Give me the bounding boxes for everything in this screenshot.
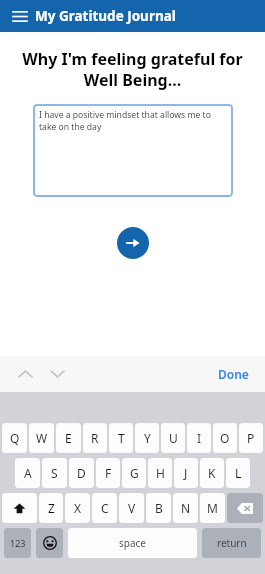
button[interactable]: Previous field — [12, 361, 38, 387]
staticText: I have a positive mindset that allows me… — [39, 109, 227, 132]
button[interactable]: Done — [214, 362, 253, 386]
staticText: 123 — [10, 537, 26, 549]
staticText: Why I'm feeling grateful for Well Being.… — [18, 48, 247, 91]
button[interactable]: M — [200, 493, 225, 523]
staticText: Y — [144, 430, 151, 446]
button[interactable]: V — [119, 493, 144, 523]
staticText: L — [235, 465, 242, 481]
staticText: X — [74, 500, 82, 516]
staticText: K — [208, 465, 216, 481]
button[interactable]: I have a positive mindset that allows me… — [33, 104, 233, 197]
staticText: O — [220, 430, 230, 446]
staticText: space — [119, 536, 146, 550]
staticText: T — [118, 430, 125, 446]
staticText: I — [197, 430, 202, 446]
button[interactable]: G — [122, 458, 146, 488]
button[interactable]: E — [56, 423, 81, 453]
button[interactable]: X — [65, 493, 90, 523]
staticText: C — [101, 500, 109, 516]
staticText: Q — [10, 430, 20, 446]
staticText: V — [128, 500, 136, 516]
staticText: R — [91, 430, 99, 446]
button[interactable]: 123 — [4, 528, 31, 558]
button[interactable]: Next field — [44, 361, 70, 387]
staticText: D — [77, 465, 86, 481]
staticText: J — [184, 465, 188, 481]
button[interactable]: I — [187, 423, 211, 453]
button[interactable]: N — [173, 493, 198, 523]
staticText: return — [217, 536, 247, 550]
button[interactable]: return — [202, 528, 261, 558]
button[interactable]: F — [96, 458, 120, 488]
staticText: B — [155, 500, 163, 516]
button[interactable]: space — [68, 528, 197, 558]
staticText: My Gratitude Journal — [35, 7, 176, 25]
staticText: U — [169, 430, 178, 446]
button[interactable]: P — [239, 423, 263, 453]
staticText: A — [24, 465, 32, 481]
button[interactable]: Open navigation menu — [9, 5, 31, 27]
staticText: P — [247, 430, 255, 446]
button[interactable]: H — [148, 458, 172, 488]
staticText: W — [36, 430, 48, 446]
button[interactable]: Backspace — [227, 493, 263, 523]
staticText: Done — [218, 366, 249, 382]
button[interactable]: S — [42, 458, 67, 488]
button[interactable]: W — [29, 423, 54, 453]
button[interactable]: Shift — [2, 493, 37, 523]
button[interactable]: T — [109, 423, 133, 453]
button[interactable]: C — [92, 493, 117, 523]
button[interactable]: Q — [2, 423, 27, 453]
staticText: H — [156, 465, 165, 481]
staticText: F — [105, 465, 112, 481]
button[interactable]: A — [15, 458, 40, 488]
button[interactable]: L — [226, 458, 250, 488]
button[interactable]: Emoji — [36, 528, 63, 558]
staticText: M — [207, 500, 218, 516]
button[interactable]: Submit — [117, 227, 149, 259]
button[interactable]: B — [146, 493, 171, 523]
staticText: E — [65, 430, 72, 446]
staticText: S — [51, 465, 58, 481]
button[interactable]: Y — [135, 423, 159, 453]
button[interactable]: J — [174, 458, 198, 488]
staticText: Z — [48, 500, 55, 516]
staticText: G — [130, 465, 139, 481]
button[interactable]: D — [69, 458, 94, 488]
button[interactable]: O — [213, 423, 237, 453]
staticText: N — [181, 500, 191, 516]
button[interactable]: Z — [39, 493, 63, 523]
button[interactable]: K — [200, 458, 224, 488]
button[interactable]: R — [83, 423, 107, 453]
button[interactable]: U — [161, 423, 185, 453]
